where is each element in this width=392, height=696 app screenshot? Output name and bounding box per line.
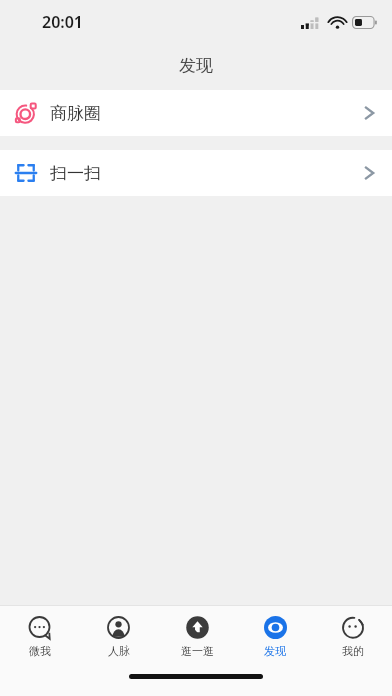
other: 微我 xyxy=(27,616,52,641)
staticText: 我的 xyxy=(342,644,364,658)
button[interactable]: 我的 xyxy=(314,606,392,668)
staticText: 微我 xyxy=(29,644,51,658)
button[interactable]: 发现 xyxy=(236,606,314,668)
staticText: 发现 xyxy=(179,55,213,76)
other: 逛一逛 xyxy=(185,616,210,641)
button[interactable]: 逛一逛 xyxy=(158,606,236,668)
button[interactable]: 人脉 xyxy=(79,606,158,668)
other: 发现 xyxy=(263,616,288,641)
staticText: 人脉 xyxy=(108,644,130,658)
staticText: 商脉圈 xyxy=(50,103,101,124)
button[interactable]: 微我 xyxy=(0,606,79,668)
staticText: 发现 xyxy=(264,644,286,658)
button[interactable]: 商脉圈 xyxy=(0,90,392,136)
other: 我的 xyxy=(341,616,366,641)
staticText: 20:01 xyxy=(42,11,84,33)
other: 人脉 xyxy=(106,616,131,641)
staticText: 逛一逛 xyxy=(181,644,214,658)
staticText: 扫一扫 xyxy=(50,163,101,184)
button[interactable]: 扫一扫 xyxy=(0,150,392,196)
